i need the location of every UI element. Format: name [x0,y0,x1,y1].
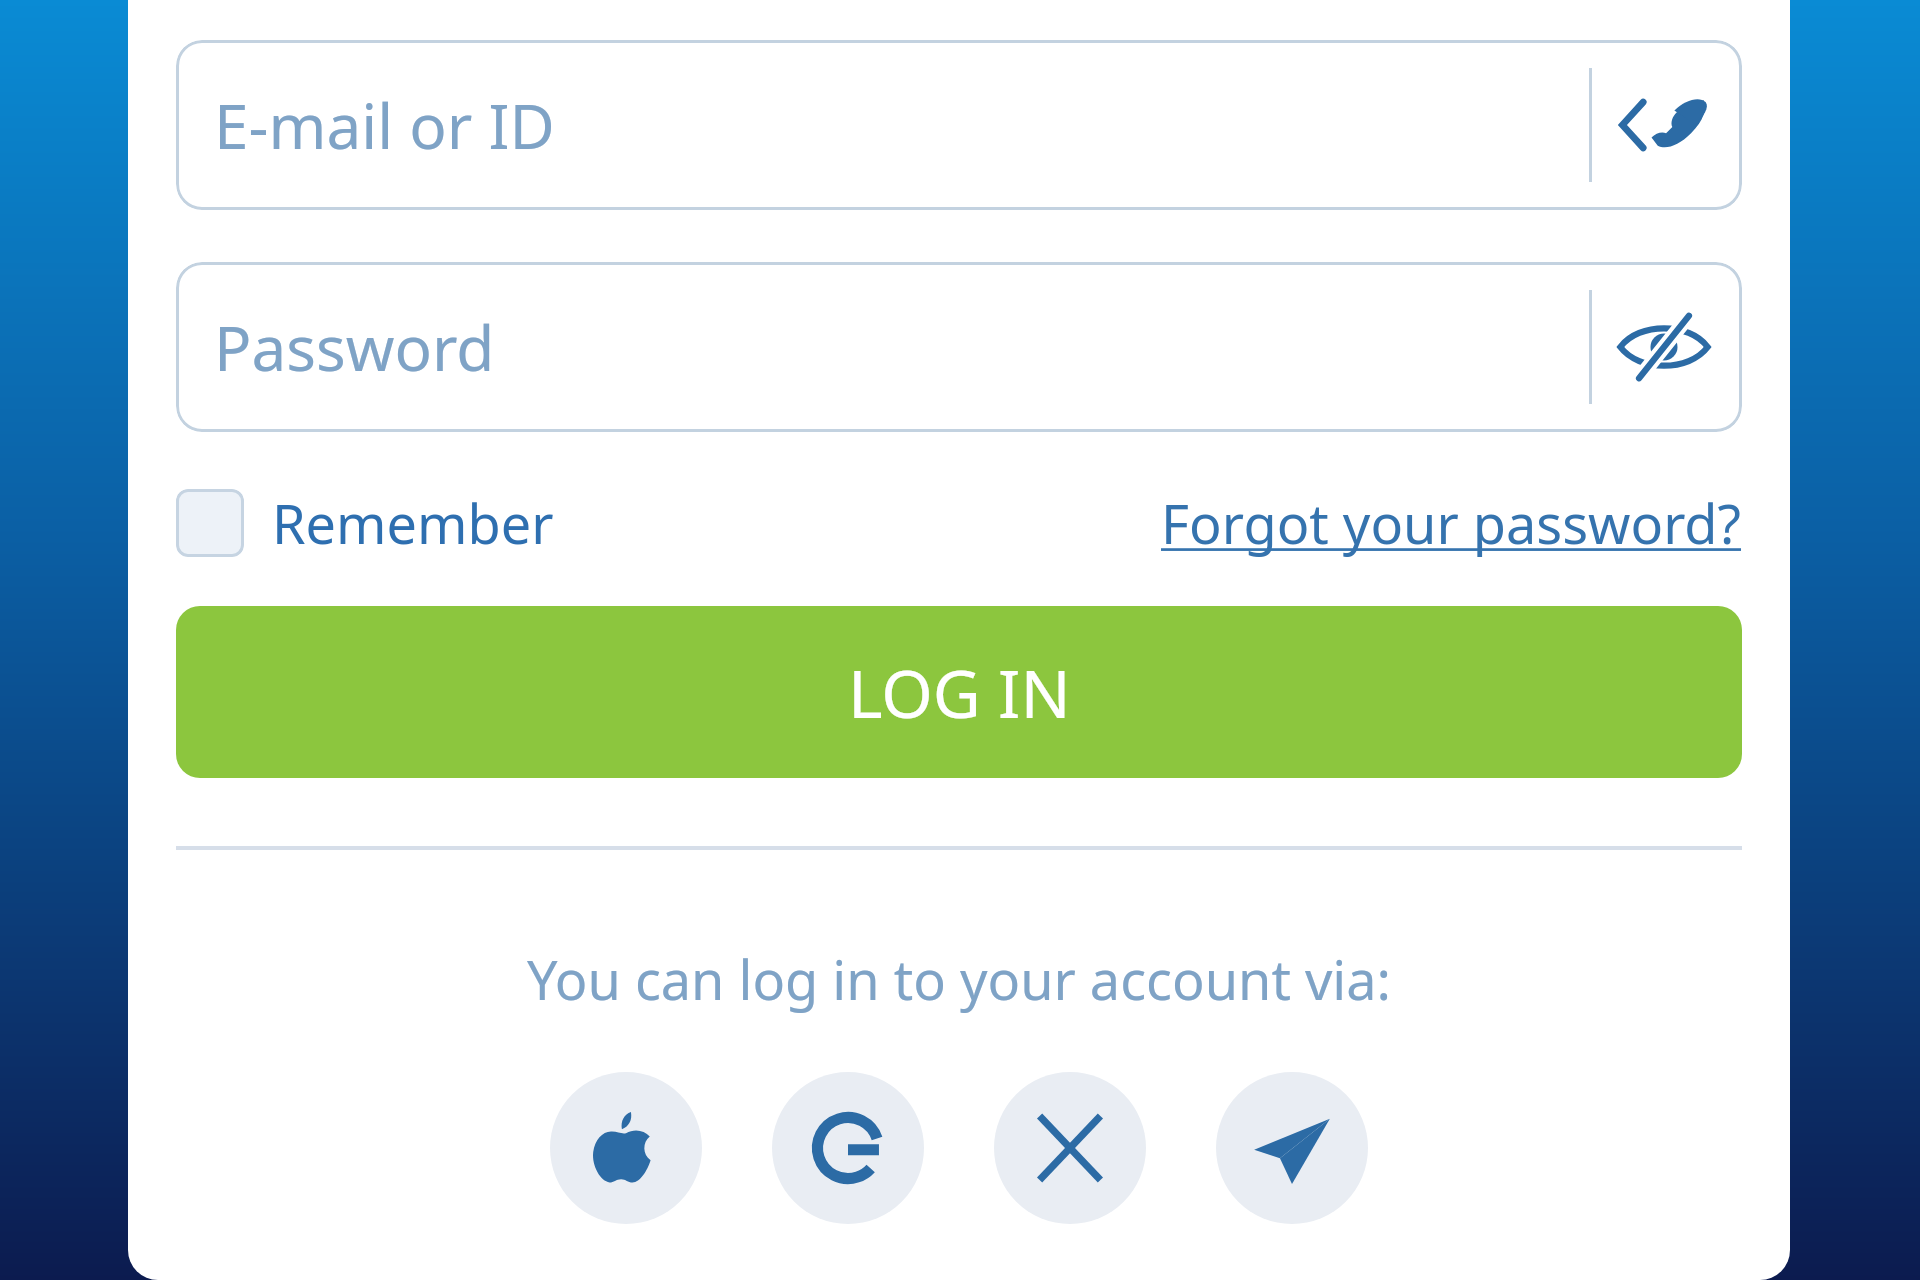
button[interactable]: Sign in with Google [772,1072,924,1224]
button[interactable]: Show password [1608,291,1720,403]
button[interactable]: Sign in with Apple [550,1072,702,1224]
button[interactable]: Password [176,262,1742,432]
button[interactable]: Forgot your password? [1161,486,1742,560]
button[interactable]: Switch to phone login [1608,69,1720,181]
button[interactable]: Remember [176,486,554,560]
staticText: Password [214,305,495,389]
button[interactable]: Sign in with Telegram [1216,1072,1368,1224]
button[interactable]: Sign in with X [994,1072,1146,1224]
button[interactable]: LOG IN [176,606,1742,778]
staticText: Forgot your password? [1161,486,1742,560]
staticText: E-mail or ID [214,83,555,167]
staticText: Remember [272,486,554,560]
staticText: LOG IN [848,647,1071,737]
button[interactable]: E-mail or ID [176,40,1742,210]
staticText: You can log in to your account via: [176,942,1742,1016]
